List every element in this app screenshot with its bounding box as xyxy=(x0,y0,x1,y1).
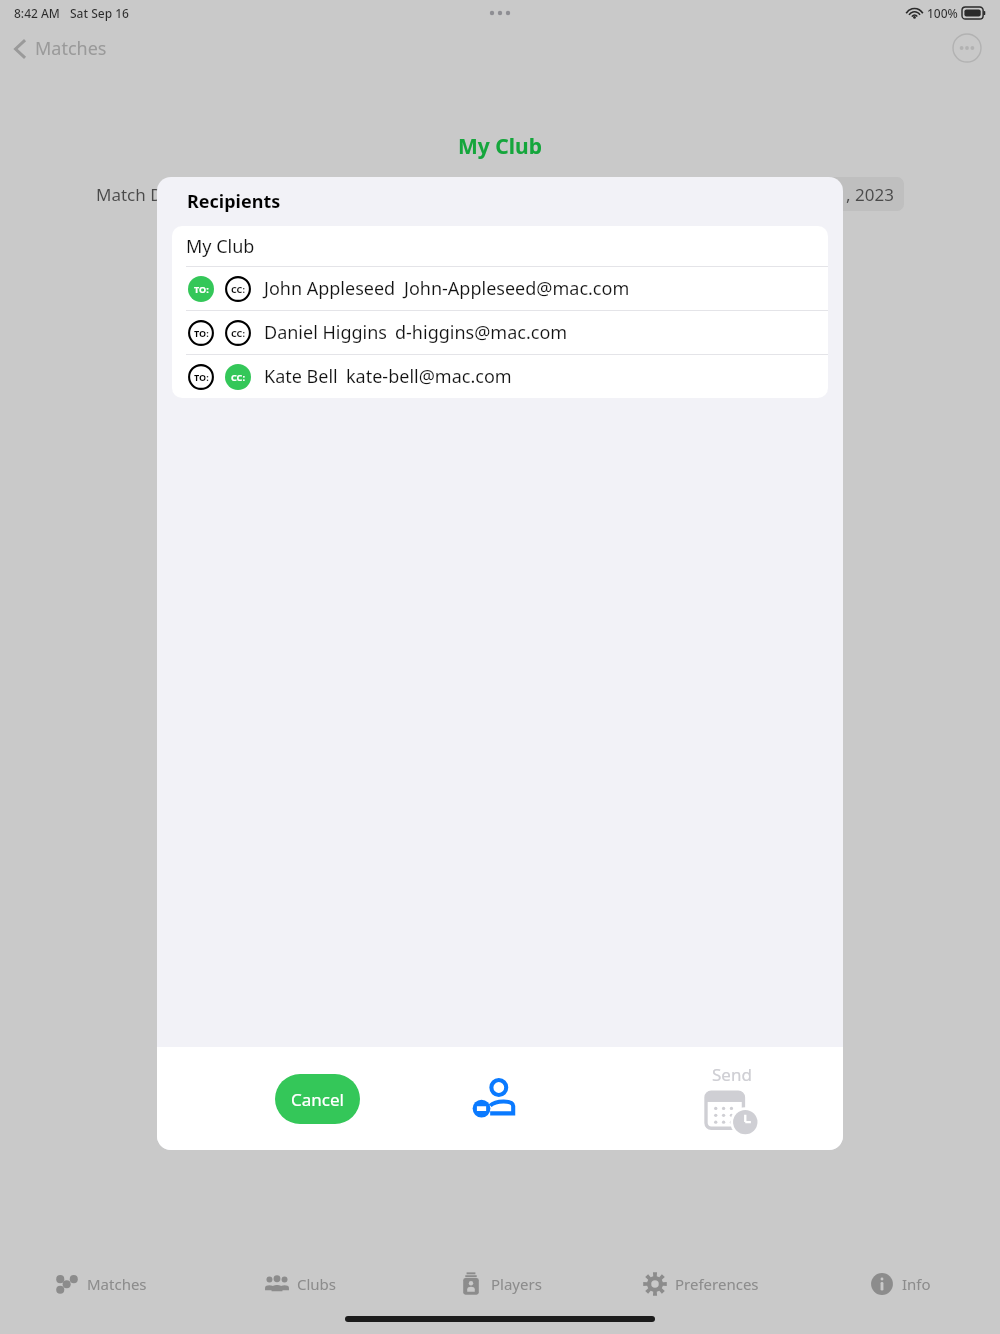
staticText: CC: xyxy=(231,283,245,295)
staticText: Info xyxy=(902,1274,931,1294)
button[interactable]: CC: xyxy=(225,364,251,390)
staticText: Clubs xyxy=(297,1274,337,1294)
staticText: Matches xyxy=(87,1274,147,1294)
staticText: kate-bell@mac.com xyxy=(346,364,512,389)
button[interactable]: TO: xyxy=(188,320,214,346)
staticText: CC: xyxy=(231,371,245,383)
button[interactable]: CC: xyxy=(225,276,251,302)
staticText: Kate Bell xyxy=(264,364,338,389)
button[interactable]: Send xyxy=(706,1063,758,1134)
button[interactable]: Remove recipient xyxy=(462,1067,526,1131)
button[interactable]: Players xyxy=(400,1256,600,1312)
button[interactable]: My Club xyxy=(172,226,828,266)
staticText: TO: xyxy=(194,327,209,339)
button[interactable]: CC: xyxy=(225,320,251,346)
staticText: 100% xyxy=(927,5,958,21)
button[interactable]: TO: xyxy=(188,364,214,390)
button[interactable]: TO: xyxy=(188,276,214,302)
button[interactable]: TO: xyxy=(172,355,828,398)
staticText: Players xyxy=(491,1274,542,1294)
button[interactable]: Clubs xyxy=(200,1256,400,1312)
staticText: My Club xyxy=(458,132,542,161)
staticText: Match D xyxy=(96,183,163,206)
staticText: Send xyxy=(712,1063,752,1086)
button[interactable]: Info xyxy=(800,1256,1000,1312)
staticText: Sat Sep 16 xyxy=(70,5,129,21)
staticText: TO: xyxy=(194,371,209,383)
staticText: , 2023 xyxy=(846,183,894,206)
button[interactable]: Cancel xyxy=(275,1074,360,1124)
staticText: d-higgins@mac.com xyxy=(395,320,568,345)
staticText: Recipients xyxy=(187,189,281,214)
staticText: TO: xyxy=(194,283,209,295)
button[interactable]: TO: xyxy=(172,311,828,354)
button[interactable]: Preferences xyxy=(600,1256,800,1312)
staticText: John Appleseed xyxy=(264,276,396,301)
staticText: My Club xyxy=(186,234,255,259)
staticText: Matches xyxy=(35,36,107,61)
staticText: Daniel Higgins xyxy=(264,320,387,345)
button[interactable]: Matches xyxy=(10,30,111,67)
staticText: John-Appleseed@mac.com xyxy=(404,276,630,301)
staticText: 8:42 AM xyxy=(14,5,60,21)
staticText: Cancel xyxy=(291,1088,344,1111)
staticText: Preferences xyxy=(675,1274,759,1294)
button[interactable]: TO: xyxy=(172,267,828,310)
button[interactable]: Matches xyxy=(0,1256,200,1312)
button[interactable]: More options xyxy=(952,33,982,63)
staticText: CC: xyxy=(231,327,245,339)
